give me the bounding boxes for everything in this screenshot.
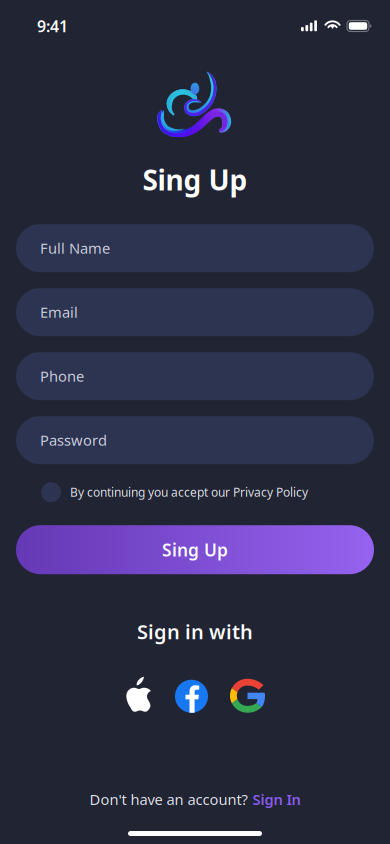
button[interactable]: Full Name [16, 224, 374, 272]
staticText: Phone [40, 366, 84, 386]
button[interactable]: Email [16, 288, 374, 336]
button[interactable]: Password [16, 416, 374, 464]
staticText: Full Name [40, 238, 110, 258]
staticText: Email [40, 302, 78, 322]
staticText: Sign In [252, 789, 300, 809]
button[interactable]: By continuing you accept our Privacy Pol… [0, 482, 390, 502]
staticText: 9:41 [37, 15, 68, 37]
staticText: Sing Up [162, 538, 228, 561]
button[interactable]: Phone [16, 352, 374, 400]
button[interactable]: Don't have an account? [89, 789, 300, 809]
staticText: Don't have an account? [89, 789, 247, 809]
button[interactable]: Sign in with Apple [125, 677, 153, 713]
button[interactable]: Sign in with Google [230, 677, 265, 713]
button[interactable]: Sing Up [16, 525, 374, 574]
staticText: Sing Up [142, 161, 247, 198]
staticText: By continuing you accept our Privacy Pol… [70, 484, 308, 500]
button[interactable]: Sign in with Facebook [175, 677, 208, 713]
staticText: Sign in with [137, 618, 253, 645]
staticText: Password [40, 430, 107, 450]
